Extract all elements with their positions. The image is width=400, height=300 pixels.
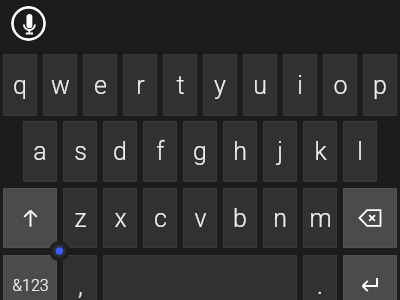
button[interactable]: u: [243, 54, 277, 116]
staticText: c: [154, 204, 167, 233]
button[interactable]: Enter: [343, 255, 397, 300]
button[interactable]: b: [223, 188, 257, 248]
staticText: k: [314, 137, 327, 166]
staticText: &123: [12, 276, 49, 295]
button[interactable]: .: [303, 255, 337, 300]
button[interactable]: o: [323, 54, 357, 116]
button[interactable]: z: [63, 188, 97, 248]
button[interactable]: s: [63, 121, 97, 182]
staticText: e: [94, 71, 107, 100]
staticText: a: [33, 137, 47, 166]
button[interactable]: r: [123, 54, 157, 116]
button[interactable]: k: [303, 121, 337, 182]
staticText: p: [373, 71, 387, 100]
staticText: r: [136, 71, 145, 100]
button[interactable]: a: [23, 121, 57, 182]
button[interactable]: Shift: [3, 188, 57, 248]
button[interactable]: c: [143, 188, 177, 248]
staticText: ,: [78, 271, 83, 300]
button[interactable]: t: [163, 54, 197, 116]
staticText: .: [317, 271, 323, 300]
staticText: s: [74, 137, 87, 166]
staticText: u: [253, 71, 267, 100]
button[interactable]: j: [263, 121, 297, 182]
staticText: g: [193, 137, 207, 166]
button[interactable]: Voice input: [11, 6, 46, 41]
button[interactable]: &123: [3, 255, 57, 300]
button[interactable]: l: [343, 121, 377, 182]
button[interactable]: Backspace: [343, 188, 397, 248]
staticText: o: [333, 71, 348, 100]
staticText: z: [74, 204, 87, 233]
staticText: m: [309, 204, 332, 233]
button[interactable]: ,: [63, 255, 97, 300]
staticText: l: [357, 137, 363, 166]
button[interactable]: x: [103, 188, 137, 248]
button[interactable]: d: [103, 121, 137, 182]
button[interactable]: f: [143, 121, 177, 182]
staticText: v: [194, 204, 207, 233]
staticText: j: [277, 137, 283, 166]
staticText: h: [233, 137, 247, 166]
staticText: w: [51, 71, 70, 100]
button[interactable]: i: [283, 54, 317, 116]
staticText: f: [156, 137, 165, 166]
staticText: x: [114, 204, 127, 233]
button[interactable]: m: [303, 188, 337, 248]
button[interactable]: e: [83, 54, 117, 116]
button[interactable]: h: [223, 121, 257, 182]
staticText: q: [13, 71, 27, 100]
button[interactable]: q: [3, 54, 37, 116]
button[interactable]: y: [203, 54, 237, 116]
staticText: y: [214, 71, 226, 100]
staticText: n: [273, 204, 287, 233]
button[interactable]: p: [363, 54, 397, 116]
button[interactable]: g: [183, 121, 217, 182]
staticText: i: [297, 71, 303, 100]
button[interactable]: n: [263, 188, 297, 248]
button[interactable]: w: [43, 54, 77, 116]
button[interactable]: v: [183, 188, 217, 248]
staticText: d: [113, 137, 127, 166]
staticText: t: [176, 71, 185, 100]
staticText: b: [233, 204, 247, 233]
